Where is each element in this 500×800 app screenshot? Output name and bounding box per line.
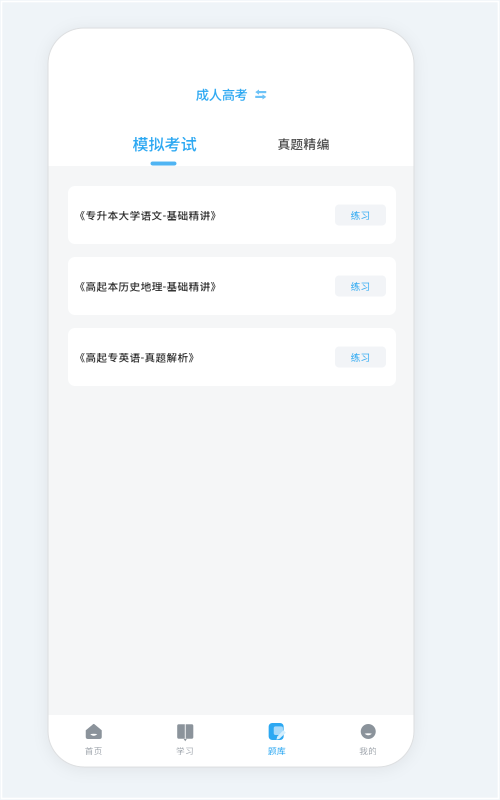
staticText: 练习 — [350, 208, 370, 222]
button[interactable]: 真题精编 — [277, 131, 329, 155]
button[interactable]: 我的 — [322, 715, 414, 767]
button[interactable]: 模拟考试 — [132, 131, 196, 155]
staticText: 《高起专英语-真题解析》 — [74, 349, 199, 365]
button[interactable]: 《高起本历史地理-基础精讲》 — [68, 257, 396, 315]
button[interactable]: 练习 — [335, 204, 386, 225]
button[interactable]: 首页 — [48, 715, 139, 767]
staticText: 成人高考 — [196, 84, 248, 104]
button[interactable]: 题库 — [231, 715, 322, 767]
staticText: 学习 — [176, 744, 194, 757]
button[interactable]: 学习 — [139, 715, 231, 767]
staticText: 模拟考试 — [132, 132, 196, 155]
button[interactable]: 成人高考 — [196, 83, 266, 105]
staticText: 《高起本历史地理-基础精讲》 — [74, 278, 221, 294]
staticText: 练习 — [350, 279, 370, 293]
staticText: 题库 — [268, 744, 286, 757]
button[interactable]: 练习 — [335, 346, 386, 367]
button[interactable]: 《专升本大学语文-基础精讲》 — [68, 186, 396, 244]
staticText: 真题精编 — [277, 134, 329, 153]
staticText: 《专升本大学语文-基础精讲》 — [74, 207, 221, 223]
staticText: 练习 — [350, 350, 370, 364]
button[interactable]: 练习 — [335, 275, 386, 296]
button[interactable]: 《高起专英语-真题解析》 — [68, 328, 396, 386]
staticText: 我的 — [359, 744, 377, 757]
staticText: 首页 — [85, 744, 103, 757]
